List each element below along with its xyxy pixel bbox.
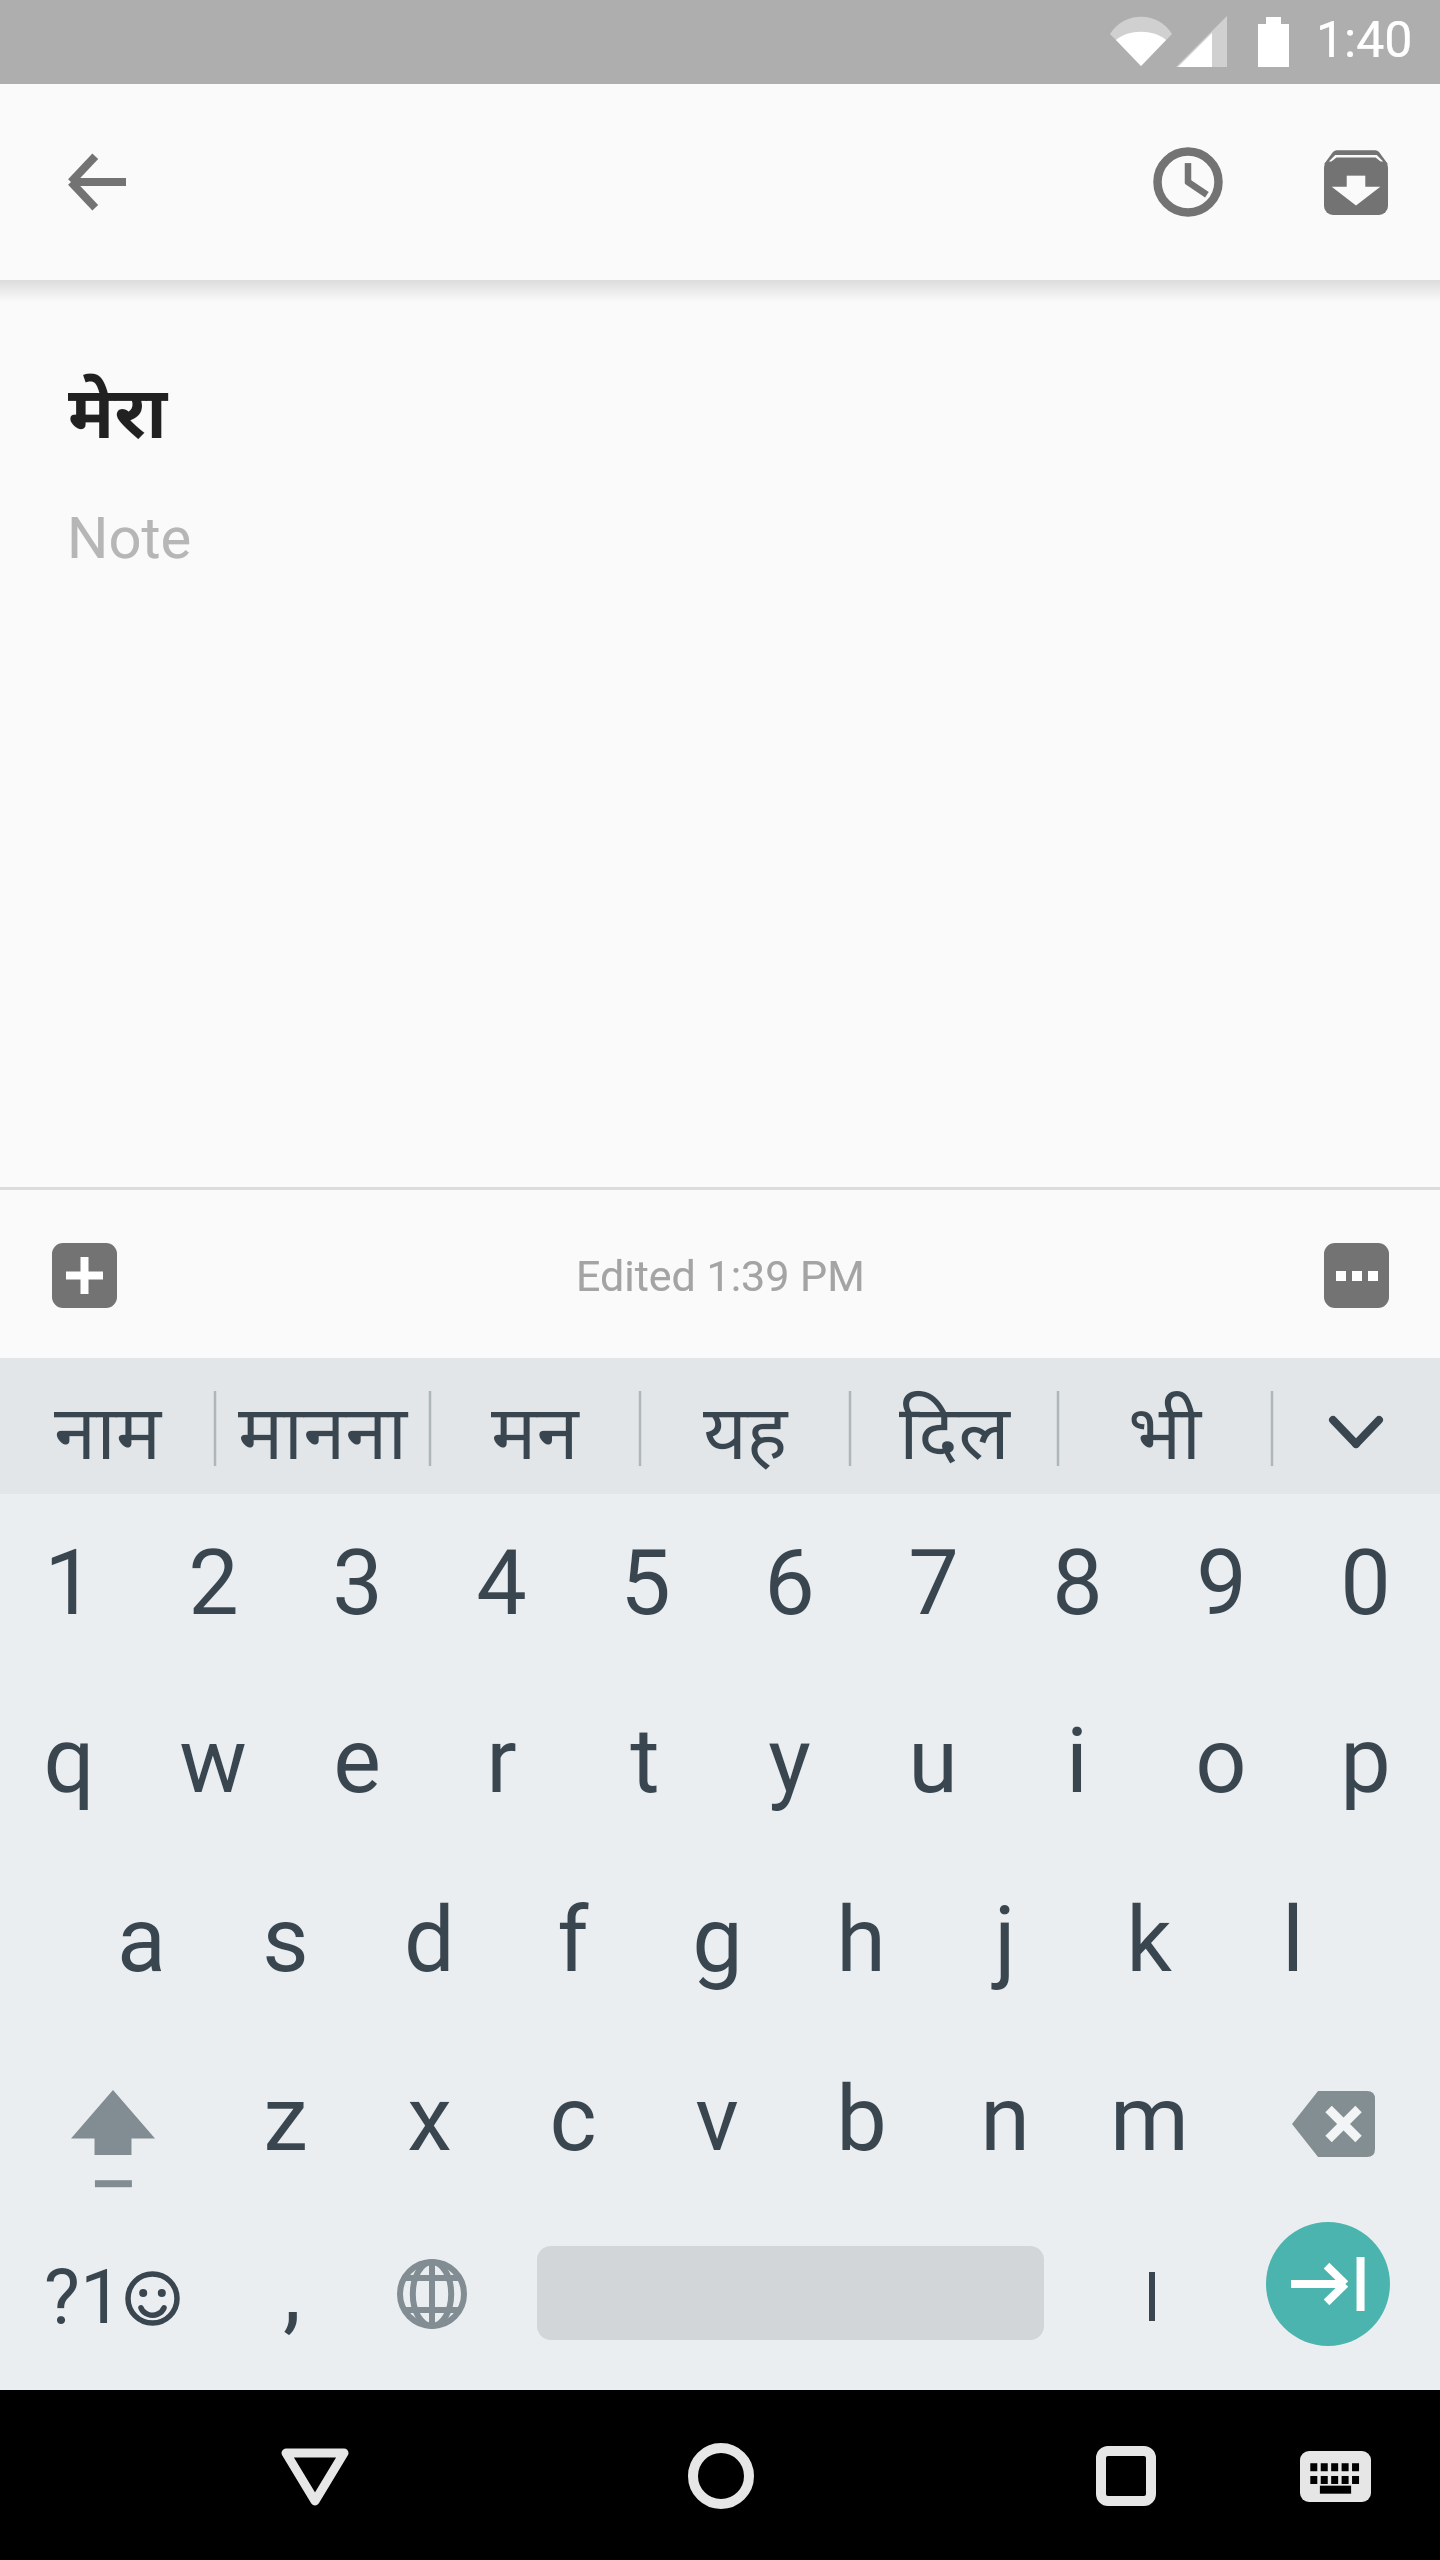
button[interactable]: 0	[1296, 1494, 1440, 1674]
button[interactable]: u	[864, 1674, 1008, 1854]
button[interactable]: भी	[1058, 1358, 1272, 1494]
staticText: मन	[491, 1378, 579, 1482]
button[interactable]: s	[216, 1854, 360, 2034]
staticText: o	[1195, 1709, 1247, 1814]
button[interactable]: o	[1152, 1674, 1296, 1854]
staticText: y	[768, 1709, 811, 1814]
button[interactable]: c	[504, 2034, 648, 2214]
staticText: e	[333, 1709, 381, 1814]
button[interactable]: Switch keyboard	[1265, 2406, 1405, 2546]
button[interactable]: 4	[432, 1494, 576, 1674]
button[interactable]: p	[1296, 1674, 1440, 1854]
button[interactable]: g	[648, 1854, 792, 2034]
button[interactable]: Recent apps	[1056, 2406, 1196, 2546]
button[interactable]: v	[648, 2034, 792, 2214]
button[interactable]: Expand suggestions	[1272, 1358, 1440, 1494]
button[interactable]: h	[792, 1854, 936, 2034]
button[interactable]: More options	[1324, 1243, 1389, 1308]
staticText: f	[557, 1888, 589, 1993]
staticText: 6	[764, 1531, 815, 1636]
button[interactable]: Reminder	[1132, 126, 1244, 238]
button[interactable]: x	[360, 2034, 504, 2214]
staticText: 8	[1052, 1531, 1103, 1636]
staticText: l	[1282, 1888, 1304, 1993]
staticText: 5	[620, 1531, 671, 1636]
button[interactable]: Hide keyboard	[245, 2406, 385, 2546]
button[interactable]: z	[216, 2034, 360, 2214]
staticText: v	[695, 2067, 739, 2172]
button[interactable]: मानना	[215, 1358, 430, 1494]
button[interactable]: j	[936, 1854, 1080, 2034]
button[interactable]: Home	[651, 2406, 791, 2546]
staticText: m	[1110, 2067, 1189, 2172]
button[interactable]: यह	[640, 1358, 850, 1494]
staticText: यह	[703, 1378, 788, 1482]
staticText: 3	[332, 1531, 383, 1636]
staticText: s	[262, 1888, 309, 1993]
button[interactable]: Add	[52, 1243, 117, 1308]
button[interactable]: Change keyboard language	[366, 2206, 498, 2382]
button[interactable]: d	[360, 1854, 504, 2034]
button[interactable]: नाम	[0, 1358, 215, 1494]
staticText: g	[692, 1888, 743, 1993]
button[interactable]: Navigate up	[41, 126, 153, 238]
button[interactable]: 2	[144, 1494, 288, 1674]
button[interactable]: l	[1224, 1854, 1368, 2034]
staticText: Note	[67, 504, 192, 572]
staticText: a	[117, 1888, 166, 1993]
staticText: p	[1340, 1709, 1391, 1814]
button[interactable]: 6	[720, 1494, 864, 1674]
staticText: भी	[1128, 1378, 1202, 1482]
staticText: c	[549, 2067, 597, 2172]
button[interactable]: मन	[430, 1358, 640, 1494]
staticText: 2	[188, 1531, 239, 1636]
button[interactable]: 1	[0, 1494, 144, 1674]
button[interactable]: Symbols and emoji	[4, 2208, 220, 2384]
staticText: z	[263, 2067, 308, 2172]
staticText: 1:40	[1316, 11, 1413, 70]
button[interactable]: w	[144, 1674, 288, 1854]
button[interactable]: 9	[1152, 1494, 1296, 1674]
staticText: n	[980, 2067, 1030, 2172]
staticText: Edited 1:39 PM	[576, 1251, 865, 1301]
staticText: मेरा	[68, 361, 168, 459]
button[interactable]: q	[0, 1674, 144, 1854]
staticText: 7	[908, 1531, 959, 1636]
staticText: i	[1066, 1709, 1088, 1814]
staticText: k	[1126, 1888, 1172, 1993]
staticText: h	[836, 1888, 886, 1993]
staticText: ?1	[44, 2252, 123, 2341]
button[interactable]: a	[72, 1854, 216, 2034]
button[interactable]: 7	[864, 1494, 1008, 1674]
button[interactable]: Delete	[1224, 2034, 1440, 2214]
staticText: r	[486, 1709, 517, 1814]
button[interactable]: b	[792, 2034, 936, 2214]
button[interactable]: k	[1080, 1854, 1224, 2034]
button[interactable]	[1083, 2214, 1224, 2390]
staticText: 4	[476, 1531, 527, 1636]
staticText: d	[404, 1888, 455, 1993]
button[interactable]: दिल	[850, 1358, 1058, 1494]
button[interactable]: m	[1080, 2034, 1224, 2214]
button[interactable]: y	[720, 1674, 864, 1854]
button[interactable]: n	[936, 2034, 1080, 2214]
button[interactable]: 8	[1008, 1494, 1152, 1674]
staticText: w	[179, 1709, 247, 1814]
button[interactable]: i	[1008, 1674, 1152, 1854]
staticText: b	[836, 2067, 887, 2172]
button[interactable]: 5	[576, 1494, 720, 1674]
button[interactable]: 3	[288, 1494, 432, 1674]
staticText: u	[908, 1709, 958, 1814]
button[interactable]: f	[504, 1854, 648, 2034]
button[interactable]: e	[288, 1674, 432, 1854]
staticText: दिल	[899, 1378, 1010, 1482]
button[interactable]: Enter	[1224, 2214, 1440, 2390]
button[interactable]: Archive	[1300, 126, 1412, 238]
staticText: 0	[1340, 1531, 1391, 1636]
button[interactable]: Shift	[0, 2034, 216, 2214]
staticText: 1	[44, 1531, 95, 1636]
button[interactable]: Space	[498, 2214, 1083, 2390]
button[interactable]: r	[432, 1674, 576, 1854]
button[interactable]: ,	[216, 2214, 366, 2390]
button[interactable]: t	[576, 1674, 720, 1854]
